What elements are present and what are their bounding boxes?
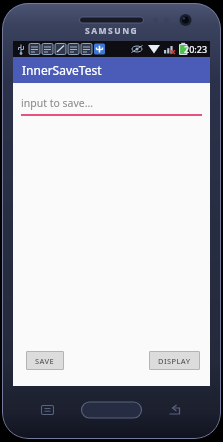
button[interactable]: SAVE [26,351,64,370]
staticText: SAVE [35,356,55,366]
button[interactable]: input to save... [21,96,202,116]
staticText: InnerSaveTest [22,62,102,78]
staticText: input to save... [21,96,94,110]
button[interactable]: DISPLAY [149,351,200,370]
button[interactable]: InnerSaveTest [13,57,210,83]
staticText: 20:23 [184,43,208,55]
staticText: SAMSUNG [85,25,139,37]
staticText: DISPLAY [158,356,191,366]
